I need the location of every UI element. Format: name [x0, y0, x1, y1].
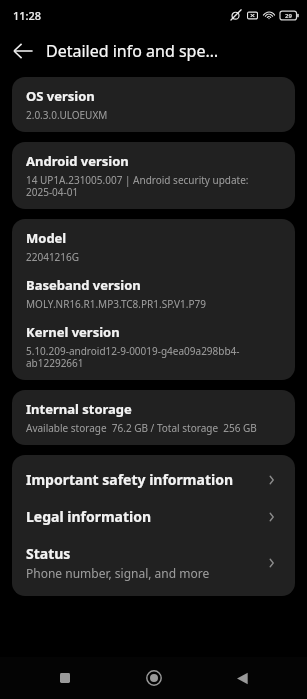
button[interactable]: Model	[12, 229, 295, 264]
staticText: Kernel version	[26, 323, 120, 341]
staticText: 5.10.209-android12-9-00019-g4ea09a298bb4…	[26, 344, 281, 370]
staticText: 22041216G	[26, 250, 80, 264]
button[interactable]: Back	[219, 657, 265, 699]
staticText: 29	[285, 12, 292, 20]
staticText: OS version	[26, 87, 95, 105]
staticText: Baseband version	[26, 276, 141, 294]
button[interactable]: Baseband version	[12, 276, 295, 311]
staticText: Available storage 76.2 GB / Total storag…	[26, 421, 257, 435]
button[interactable]: Navigate up	[0, 30, 46, 71]
staticText: 14 UP1A.231005.007 | Android security up…	[26, 173, 281, 199]
staticText: 2.0.3.0.ULOEUXM	[26, 108, 108, 122]
button[interactable]: Home	[131, 657, 177, 699]
staticText: Important safety information	[26, 470, 233, 489]
staticText: Model	[26, 229, 67, 247]
button[interactable]: Status	[12, 535, 295, 590]
staticText: Android version	[26, 152, 129, 170]
button[interactable]: Internal storage	[12, 390, 295, 445]
staticText: MOLY.NR16.R1.MP3.TC8.PR1.SP.V1.P79	[26, 297, 206, 311]
staticText: Legal information	[26, 507, 152, 526]
staticText: Phone number, signal, and more	[26, 565, 210, 581]
button[interactable]: Recent apps	[42, 657, 88, 699]
button[interactable]: Kernel version	[12, 323, 295, 370]
staticText: Internal storage	[26, 400, 132, 418]
button[interactable]: Important safety information	[12, 461, 295, 498]
button[interactable]: Legal information	[12, 498, 295, 535]
staticText: Detailed info and spe…	[46, 40, 219, 62]
button[interactable]: Android version	[12, 142, 295, 209]
button[interactable]: OS version	[12, 77, 295, 132]
staticText: Status	[26, 544, 71, 563]
staticText: 11:28	[13, 8, 42, 23]
